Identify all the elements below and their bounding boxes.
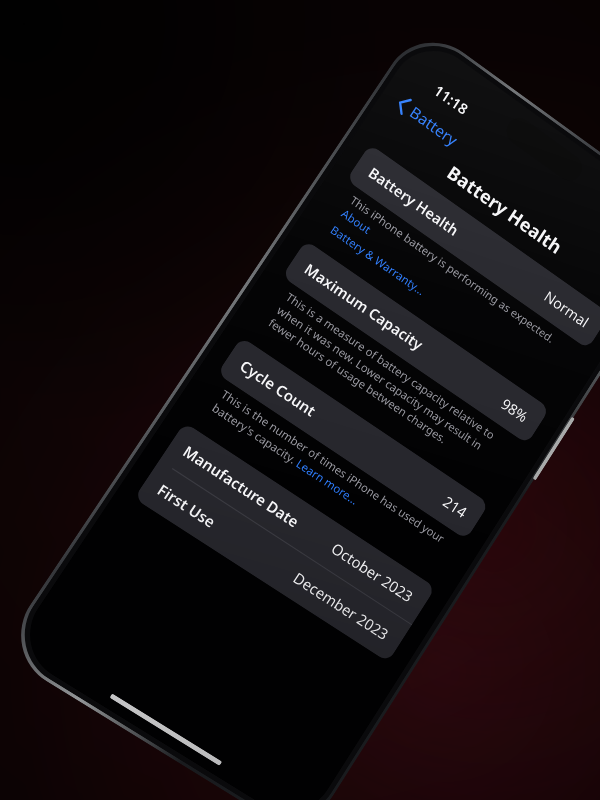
staticText: Battery & Warranty… — [327, 222, 428, 299]
staticText: This is the number of times iPhone has u… — [209, 386, 451, 562]
staticText: 214 — [440, 491, 471, 522]
button[interactable]: Manufacture Date — [160, 422, 436, 624]
button[interactable]: Maximum Capacity — [282, 240, 550, 444]
button[interactable]: First Use — [134, 460, 412, 662]
staticText: December 2023 — [290, 567, 393, 644]
button[interactable]: Battery — [386, 86, 469, 157]
button[interactable]: Battery & Warranty… — [327, 222, 428, 299]
staticText: Battery Health — [442, 160, 567, 260]
staticText: First Use — [154, 479, 220, 532]
staticText: Cycle Count — [236, 355, 320, 421]
staticText: Battery — [406, 101, 462, 151]
button[interactable]: Battery Health — [346, 144, 600, 349]
staticText: Battery Health — [365, 162, 463, 240]
staticText: This iPhone battery is performing as exp… — [339, 193, 573, 370]
staticText: 98% — [498, 394, 532, 426]
staticText: October 2023 — [328, 538, 417, 606]
staticText: Manufacture Date — [179, 441, 303, 531]
staticText: Maximum Capacity — [301, 258, 427, 354]
button[interactable]: Cycle Count — [217, 337, 489, 540]
staticText: This is a measure of battery capacity re… — [266, 289, 513, 478]
button[interactable]: Volume button — [532, 416, 575, 481]
staticText: 11:18 — [430, 80, 472, 119]
staticText: Normal — [541, 286, 592, 331]
